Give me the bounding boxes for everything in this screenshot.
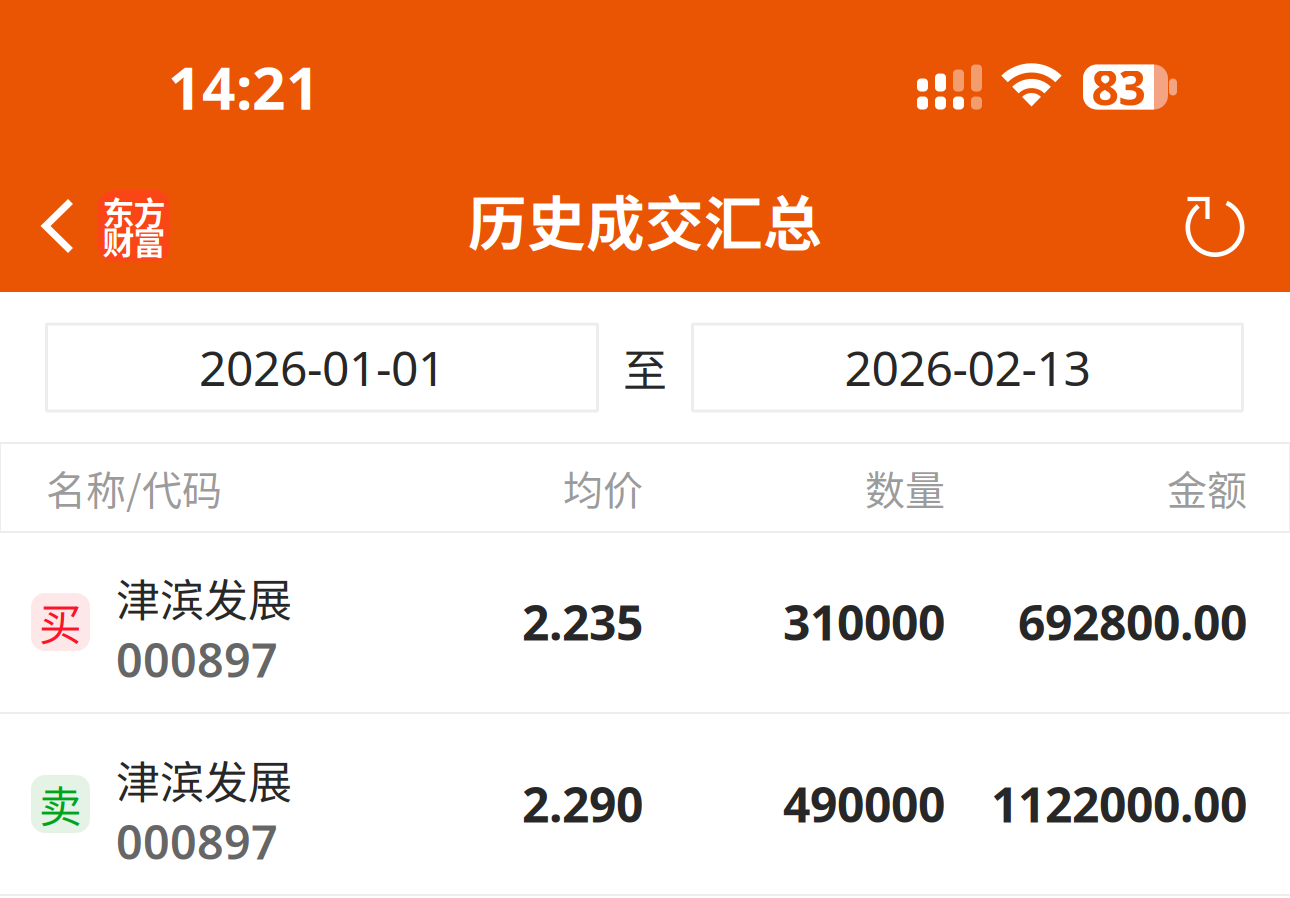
button[interactable]: 卖 bbox=[0, 714, 1290, 894]
staticText: 津滨发展 bbox=[116, 748, 292, 811]
staticText: 均价 bbox=[563, 458, 643, 516]
staticText: 至 bbox=[623, 336, 667, 399]
staticText: 卖 bbox=[39, 773, 82, 835]
staticText: 310000 bbox=[783, 590, 945, 654]
staticText: 2026-02-13 bbox=[844, 336, 1090, 399]
button[interactable]: 买 bbox=[0, 532, 1290, 712]
staticText: 000897 bbox=[116, 810, 278, 872]
staticText: 1122000.00 bbox=[991, 772, 1247, 836]
staticText: 14:21 bbox=[168, 48, 320, 126]
staticText: 000897 bbox=[116, 628, 278, 690]
staticText: 数量 bbox=[865, 458, 945, 516]
staticText: 买 bbox=[39, 591, 82, 653]
staticText: 东 bbox=[102, 188, 134, 234]
staticText: 2.235 bbox=[522, 590, 643, 654]
staticText: 历史成交汇总 bbox=[468, 177, 822, 262]
staticText: 名称/代码 bbox=[46, 458, 222, 516]
button[interactable]: Refresh bbox=[1155, 170, 1290, 282]
staticText: 津滨发展 bbox=[116, 566, 292, 629]
staticText: 金额 bbox=[1167, 458, 1247, 516]
staticText: 富 bbox=[133, 217, 165, 264]
staticText: 方 bbox=[133, 188, 165, 234]
staticText: 490000 bbox=[783, 772, 945, 836]
button[interactable]: 2026-02-13 bbox=[691, 322, 1244, 412]
staticText: 83 bbox=[1091, 55, 1145, 119]
button[interactable]: 2026-01-01 bbox=[45, 322, 599, 412]
staticText: 692800.00 bbox=[1018, 590, 1247, 654]
staticText: 财 bbox=[102, 217, 134, 264]
staticText: 2.290 bbox=[522, 772, 643, 836]
staticText: 2026-01-01 bbox=[199, 336, 445, 399]
button[interactable]: Back bbox=[0, 170, 188, 282]
